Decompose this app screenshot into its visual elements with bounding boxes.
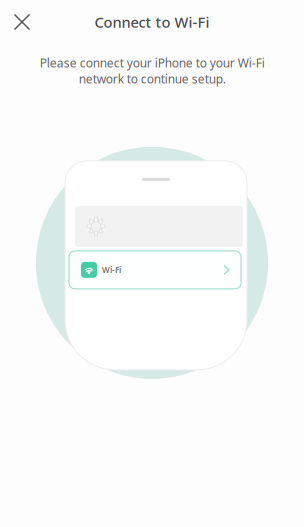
staticText: Connect to Wi-Fi [94, 12, 209, 32]
staticText: Please connect your iPhone to your Wi-Fi… [39, 55, 264, 87]
button[interactable]: Wi-Fi [69, 251, 241, 289]
button[interactable]: Close [0, 0, 44, 44]
staticText: Wi-Fi [102, 265, 121, 275]
